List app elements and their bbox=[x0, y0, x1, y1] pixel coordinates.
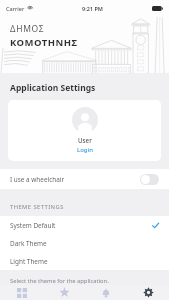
button[interactable]: User bbox=[8, 100, 161, 161]
staticText: THEME SETTINGS bbox=[10, 203, 64, 211]
button[interactable]: Notifications bbox=[85, 285, 127, 300]
staticText: Light Theme bbox=[10, 257, 48, 266]
button[interactable]: Dark Theme bbox=[0, 234, 169, 252]
button[interactable]: System Default bbox=[0, 216, 169, 234]
staticText: Dark Theme bbox=[10, 239, 47, 248]
button[interactable]: Favorites bbox=[43, 285, 85, 300]
staticText: System Default bbox=[10, 221, 56, 230]
staticText: Login bbox=[77, 146, 93, 154]
button[interactable]: I use a wheelchair bbox=[0, 169, 169, 189]
staticText: Carrier bbox=[6, 5, 25, 12]
staticText: 9:21 PM bbox=[82, 5, 103, 12]
button[interactable]: Dashboard bbox=[0, 285, 43, 300]
staticText: ΔΗΜΟΣ bbox=[10, 23, 45, 35]
button[interactable]: Settings bbox=[127, 285, 169, 300]
staticText: Application Settings bbox=[10, 82, 96, 94]
staticText: User bbox=[78, 136, 92, 144]
button[interactable]: Login bbox=[77, 146, 93, 154]
staticText: I use a wheelchair bbox=[10, 175, 65, 184]
button[interactable]: Light Theme bbox=[0, 252, 169, 270]
staticText: Select the theme for the application. bbox=[10, 277, 109, 285]
staticText: ΚΟΜΟΤΗΝΗΣ bbox=[10, 36, 78, 49]
